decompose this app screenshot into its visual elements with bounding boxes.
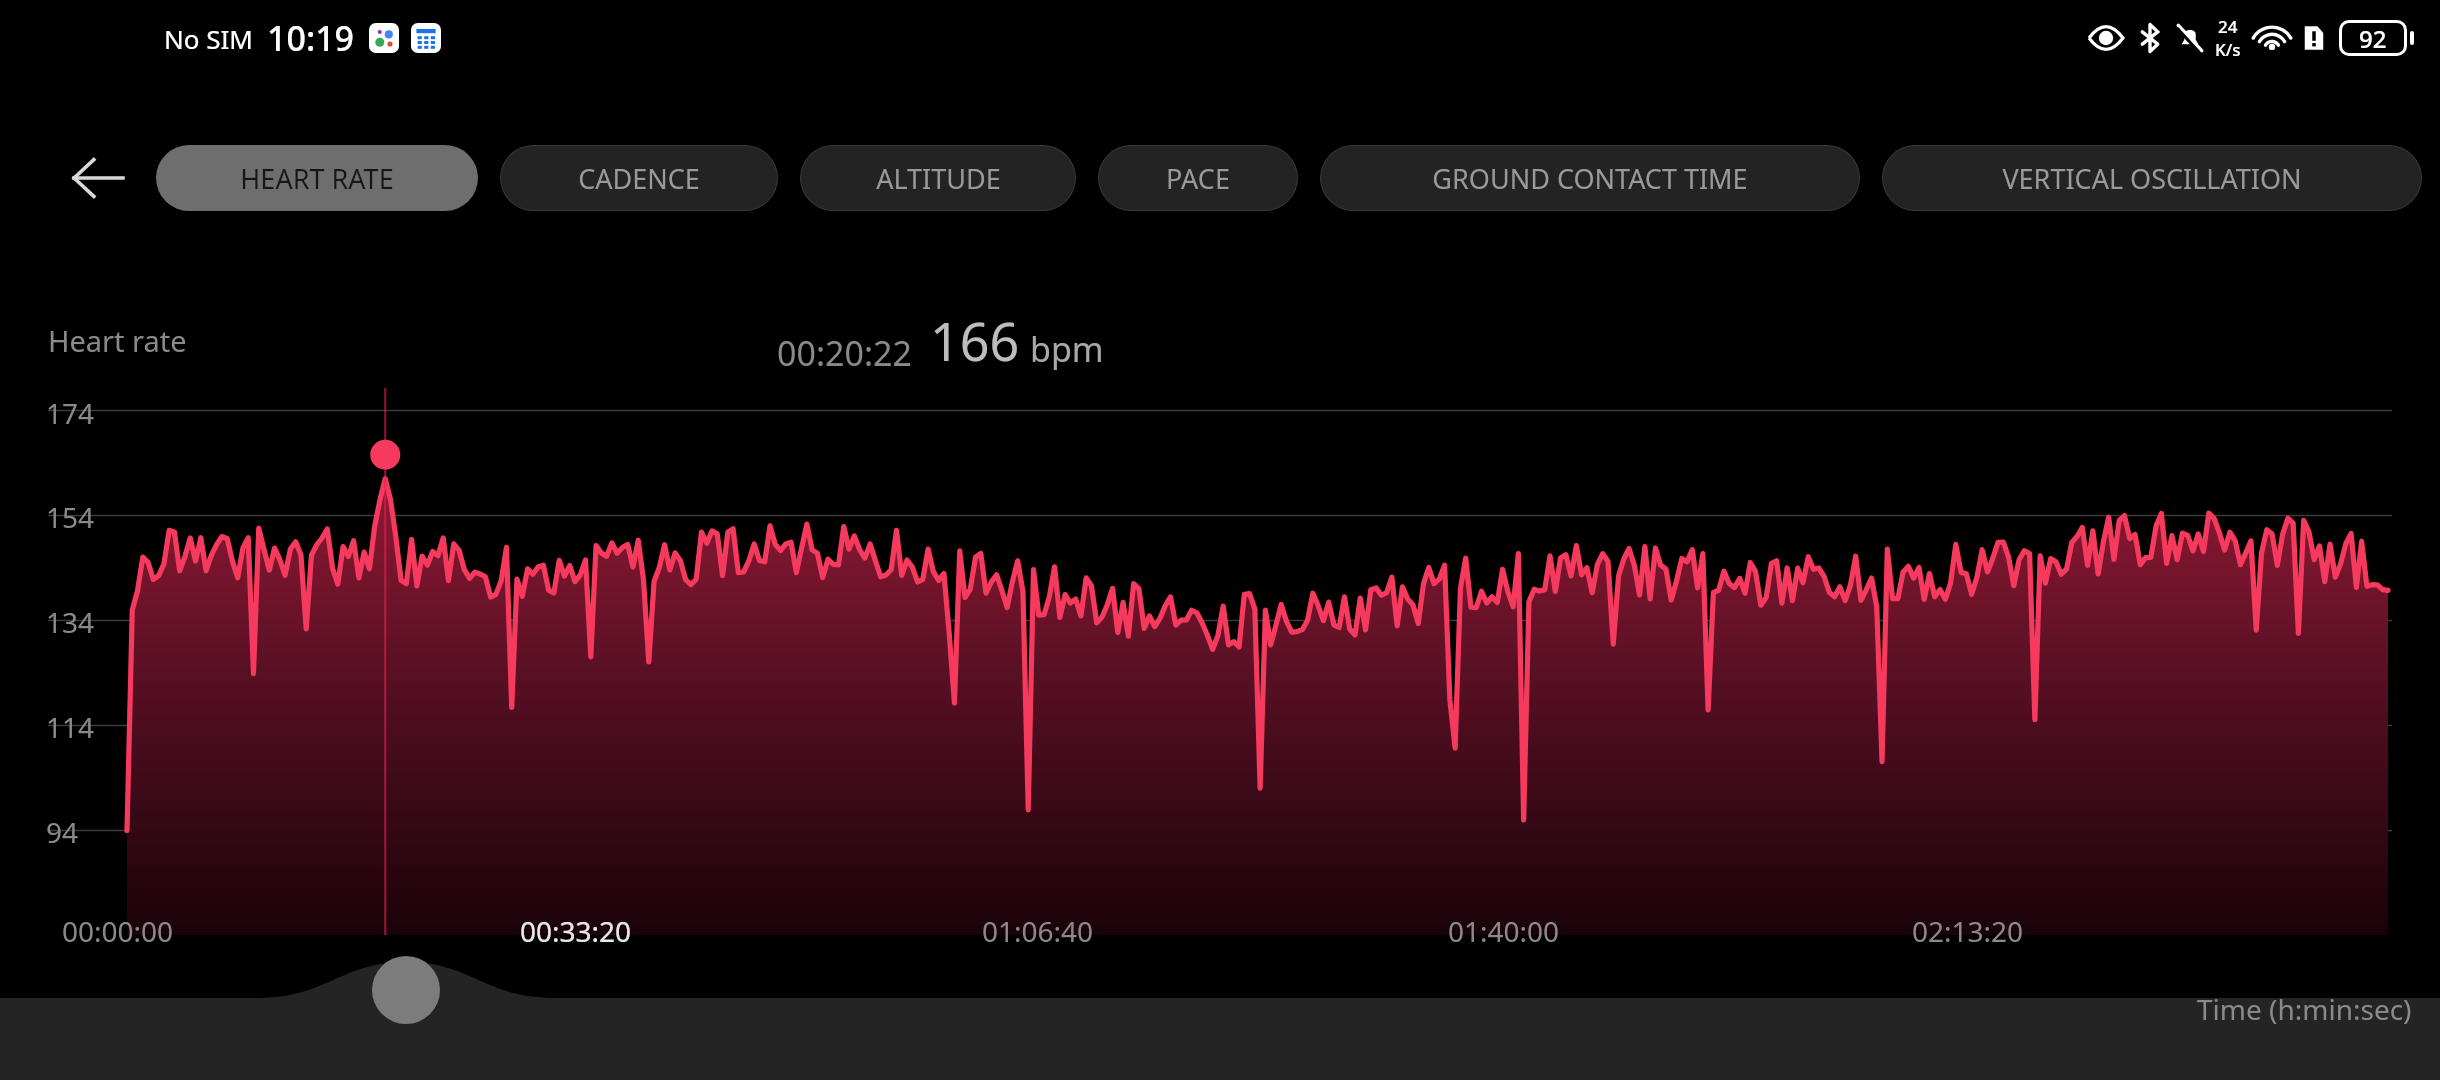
staticText: 00:00:00 <box>62 912 174 950</box>
staticText: 00:20:22 <box>777 330 912 376</box>
staticText: 166 <box>930 305 1020 376</box>
staticText: CADENCE <box>578 160 700 197</box>
staticText: 00:33:20 <box>520 912 632 950</box>
button[interactable]: Back <box>62 142 134 214</box>
staticText: No SIM <box>164 21 253 56</box>
staticText: Heart rate <box>48 321 187 360</box>
staticText: 92 <box>2359 22 2387 55</box>
button[interactable]: VERTICAL OSCILLATION <box>1882 145 2422 211</box>
staticText: 114 <box>46 708 95 746</box>
staticText: Time (h:min:sec) <box>2197 990 2412 1028</box>
staticText: 10:19 <box>267 15 355 61</box>
staticText: 154 <box>46 498 95 536</box>
staticText: PACE <box>1166 160 1230 197</box>
staticText: HEART RATE <box>240 160 394 197</box>
staticText: 134 <box>46 603 95 641</box>
staticText: 94 <box>46 813 79 851</box>
staticText: K/s <box>2215 38 2241 61</box>
staticText: 24 <box>2218 15 2238 38</box>
button[interactable]: CADENCE <box>500 145 778 211</box>
staticText: ALTITUDE <box>876 160 1001 197</box>
staticText: VERTICAL OSCILLATION <box>2002 160 2302 197</box>
staticText: 174 <box>46 394 95 432</box>
staticText: GROUND CONTACT TIME <box>1432 160 1748 197</box>
staticText: bpm <box>1030 326 1104 372</box>
button[interactable]: HEART RATE <box>156 145 478 211</box>
staticText: 02:13:20 <box>1912 912 2024 950</box>
staticText: 01:40:00 <box>1448 912 1560 950</box>
button[interactable]: PACE <box>1098 145 1298 211</box>
staticText: 01:06:40 <box>982 912 1094 950</box>
button[interactable]: ALTITUDE <box>800 145 1076 211</box>
button[interactable]: GROUND CONTACT TIME <box>1320 145 1860 211</box>
